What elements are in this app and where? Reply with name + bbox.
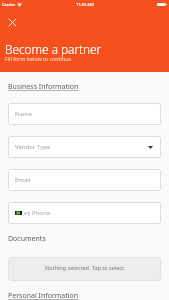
staticText: Carrier [2,2,16,7]
staticText: Documents [8,234,46,244]
button[interactable]: Close [4,14,21,31]
staticText: Nothing selected. Tap to select [45,264,124,271]
button[interactable]: Email [8,169,161,191]
staticText: Email [15,176,31,184]
staticText: 11:53 AM [76,2,94,7]
button[interactable]: Nothing selected. Tap to select [8,257,161,281]
staticText: Become a partner [5,41,102,57]
staticText: +1 [24,210,31,217]
staticText: Personal Information [8,291,79,300]
button[interactable]: Name [8,103,161,125]
staticText: Phone [32,209,51,217]
staticText: Vendor Type [15,143,51,151]
button[interactable]: +1 [8,202,161,224]
staticText: Fill form below to continue [5,55,72,62]
staticText: Name [15,110,32,118]
staticText: Business Information [8,82,79,92]
button[interactable]: Vendor Type [8,136,161,158]
